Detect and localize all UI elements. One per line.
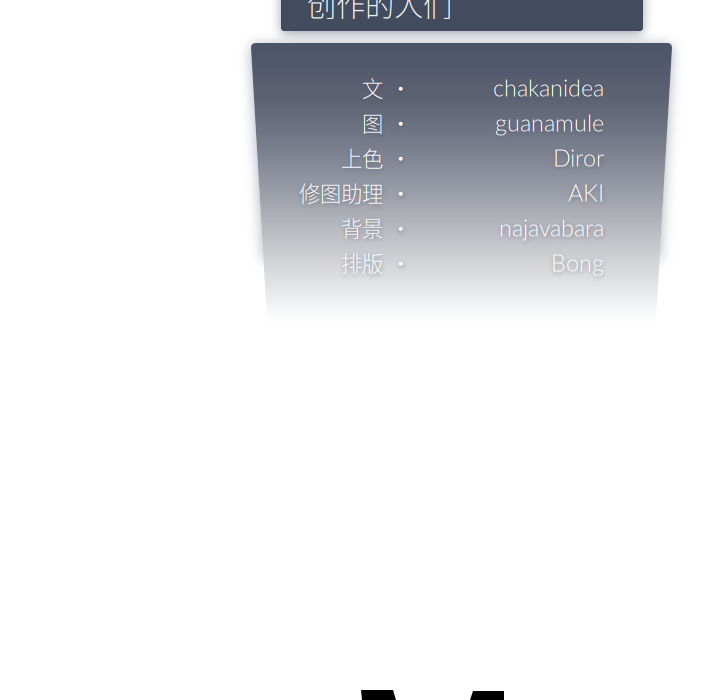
button[interactable]: 上色 bbox=[251, 140, 672, 175]
staticText: 上色 bbox=[341, 142, 383, 173]
button[interactable]: 创作的人们 bbox=[281, 0, 643, 31]
staticText: najavabara bbox=[499, 213, 604, 241]
button[interactable]: 图 bbox=[251, 105, 672, 140]
button[interactable]: 排版 bbox=[251, 245, 672, 280]
staticText: guanamule bbox=[495, 108, 604, 136]
staticText: 文 bbox=[362, 72, 383, 103]
button[interactable]: 修图助理 bbox=[251, 175, 672, 210]
staticText: · bbox=[390, 72, 411, 103]
staticText: Bong bbox=[551, 248, 604, 276]
staticText: · bbox=[390, 212, 411, 243]
staticText: 背景 bbox=[341, 212, 383, 243]
staticText: · bbox=[390, 107, 411, 138]
staticText: 排版 bbox=[341, 247, 383, 278]
staticText: 图 bbox=[362, 107, 383, 138]
staticText: chakanidea bbox=[493, 73, 604, 101]
staticText: · bbox=[390, 247, 411, 278]
staticText: AKI bbox=[568, 178, 604, 206]
staticText: 创作的人们 bbox=[307, 0, 452, 25]
button[interactable]: 背景 bbox=[251, 210, 672, 245]
button[interactable]: 文 bbox=[251, 70, 672, 105]
staticText: 修图助理 bbox=[299, 177, 383, 208]
staticText: · bbox=[390, 142, 411, 173]
staticText: · bbox=[390, 177, 411, 208]
staticText: Diror bbox=[553, 143, 604, 171]
